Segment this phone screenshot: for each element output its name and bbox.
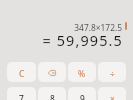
button[interactable]: 8 bbox=[38, 87, 66, 100]
button[interactable]: 7 bbox=[7, 87, 36, 100]
button[interactable]: % bbox=[68, 62, 96, 82]
staticText: 347.8×172.5 bbox=[74, 22, 122, 33]
button[interactable]: C bbox=[7, 62, 36, 82]
staticText: % bbox=[78, 68, 86, 79]
staticText: ÷ bbox=[110, 68, 115, 79]
button[interactable]: × bbox=[98, 87, 126, 100]
button[interactable]: ÷ bbox=[98, 62, 126, 82]
staticText: 7 bbox=[19, 93, 24, 100]
staticText: C bbox=[19, 68, 25, 79]
button[interactable]: 9 bbox=[68, 87, 96, 100]
staticText: × bbox=[110, 93, 115, 100]
button[interactable]: Backspace bbox=[38, 62, 66, 82]
staticText: 8 bbox=[50, 93, 55, 100]
staticText: 9 bbox=[80, 93, 85, 100]
staticText: = 59,995.5 bbox=[42, 31, 123, 51]
